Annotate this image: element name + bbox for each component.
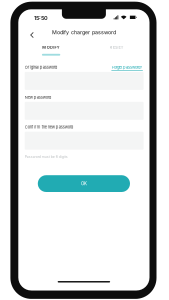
- button[interactable]: RESET: [84, 41, 149, 54]
- staticText: 15:50: [34, 15, 48, 21]
- staticText: RESET: [110, 45, 124, 50]
- staticText: OK: [81, 181, 87, 186]
- staticText: Password must be 6 digits: [25, 155, 68, 159]
- staticText: Confirm the new password: [25, 125, 73, 129]
- button[interactable]: OK: [38, 175, 130, 192]
- staticText: Original password: [25, 65, 57, 70]
- button[interactable]: MODIFY: [18, 41, 84, 58]
- staticText: New password: [25, 95, 51, 100]
- staticText: MODIFY: [42, 45, 60, 50]
- staticText: Forget password?: [112, 65, 142, 70]
- button[interactable]: Back: [27, 30, 37, 40]
- staticText: Modify charger password: [52, 29, 116, 36]
- button[interactable]: Forget password?: [111, 65, 143, 71]
